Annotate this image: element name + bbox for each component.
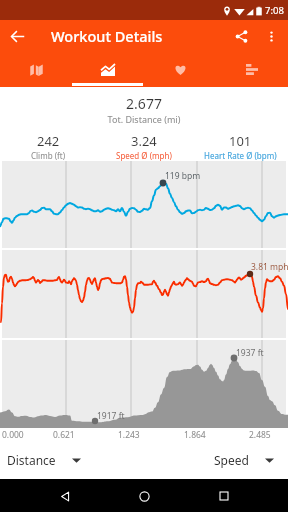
- button[interactable]: Back: [0, 20, 34, 52]
- staticText: 1.864: [184, 429, 206, 441]
- staticText: 0.621: [53, 429, 75, 441]
- staticText: 2.677: [0, 94, 288, 113]
- button[interactable]: Recents: [209, 481, 239, 511]
- staticText: Climb (ft): [31, 150, 66, 161]
- button[interactable]: Charts: [72, 52, 144, 87]
- staticText: 1.243: [118, 429, 140, 441]
- staticText: Tot. Distance (mi): [0, 113, 288, 125]
- staticText: 1917 ft: [97, 410, 125, 422]
- button[interactable]: Heart rate: [144, 52, 216, 87]
- staticText: 101: [229, 132, 252, 150]
- button[interactable]: Map: [0, 52, 72, 87]
- staticText: 119 bpm: [165, 170, 201, 182]
- staticText: 3.24: [131, 132, 157, 150]
- staticText: 3.81 mph: [251, 261, 288, 273]
- staticText: Speed: [214, 452, 249, 468]
- staticText: 7:08: [265, 4, 284, 17]
- button[interactable]: Laps: [216, 52, 288, 87]
- staticText: Heart Rate Ø (bpm): [204, 150, 277, 161]
- staticText: 242: [37, 132, 60, 150]
- button[interactable]: Back: [50, 481, 80, 511]
- button[interactable]: Distance: [7, 447, 87, 473]
- button[interactable]: More options: [257, 22, 285, 50]
- staticText: 2.485: [249, 429, 271, 441]
- staticText: Distance: [7, 452, 56, 468]
- staticText: 1937 ft: [236, 347, 264, 359]
- staticText: Workout Details: [51, 26, 163, 46]
- button[interactable]: Speed: [214, 447, 280, 473]
- button[interactable]: Share: [225, 20, 257, 52]
- button[interactable]: Home: [129, 481, 159, 511]
- staticText: 0.000: [2, 429, 24, 441]
- staticText: Speed Ø (mph): [116, 150, 172, 161]
